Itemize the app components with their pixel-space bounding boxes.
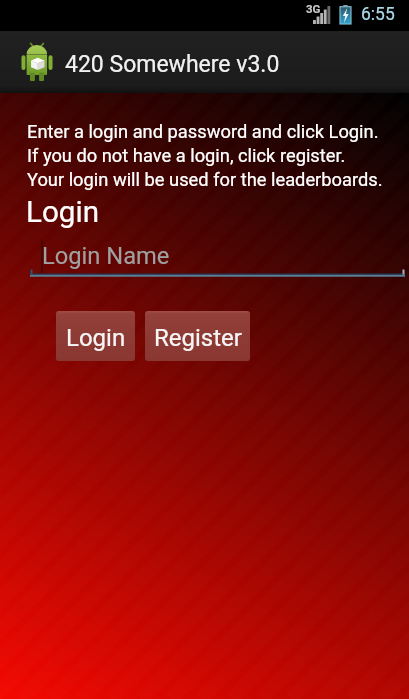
other: Battery charging (340, 5, 351, 24)
staticText: Your login will be used for the leaderbo… (27, 169, 383, 190)
staticText: Register (154, 324, 242, 352)
button[interactable]: Login Name (30, 240, 405, 278)
staticText: 6:55 (361, 4, 395, 25)
staticText: 420 Somewhere v3.0 (65, 51, 280, 78)
button[interactable]: Register (145, 311, 250, 361)
staticText: Login (26, 195, 99, 230)
staticText: Login Name (42, 242, 170, 270)
staticText: 3G (306, 2, 321, 15)
staticText: If you do not have a login, click regist… (27, 145, 346, 166)
button[interactable]: Login (56, 311, 135, 361)
other: Mobile signal strength, 3G (313, 6, 331, 24)
button[interactable]: 420 Somewhere v3.0, app home (21, 37, 280, 87)
staticText: Login (66, 324, 126, 352)
staticText: Enter a login and password and click Log… (27, 121, 379, 142)
